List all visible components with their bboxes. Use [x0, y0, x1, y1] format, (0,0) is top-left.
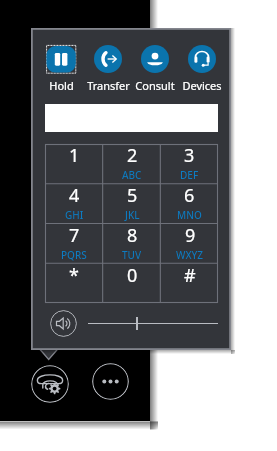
- staticText: GHI: [65, 208, 84, 222]
- staticText: Hold: [49, 78, 74, 93]
- staticText: 8: [127, 223, 138, 248]
- button[interactable]: 9: [161, 224, 218, 264]
- staticText: 2: [127, 143, 138, 168]
- button[interactable]: Call settings: [31, 365, 69, 403]
- staticText: PQRS: [61, 248, 87, 262]
- staticText: TUV: [122, 248, 142, 262]
- button[interactable]: #: [161, 264, 218, 303]
- staticText: 0: [127, 263, 138, 288]
- staticText: JKL: [125, 208, 140, 222]
- staticText: *: [69, 263, 79, 288]
- button[interactable]: Speaker volume: [50, 310, 77, 337]
- button[interactable]: 8: [103, 224, 161, 264]
- staticText: Consult: [135, 78, 175, 93]
- button[interactable]: Devices: [179, 44, 225, 91]
- button[interactable]: *: [45, 264, 103, 303]
- staticText: 6: [184, 183, 195, 208]
- button[interactable]: Hold: [38, 44, 84, 91]
- staticText: 4: [69, 183, 80, 208]
- staticText: 5: [127, 183, 138, 208]
- button[interactable]: 6: [161, 184, 218, 224]
- staticText: Devices: [182, 78, 222, 93]
- button[interactable]: Volume slider: [86, 313, 220, 334]
- staticText: WXYZ: [176, 248, 204, 262]
- button[interactable]: 1: [45, 144, 103, 184]
- staticText: DEF: [180, 168, 199, 182]
- button[interactable]: 5: [103, 184, 161, 224]
- button[interactable]: 7: [45, 224, 103, 264]
- button[interactable]: 2: [103, 144, 161, 184]
- staticText: ABC: [122, 168, 142, 182]
- button[interactable]: More options: [92, 363, 129, 400]
- button[interactable]: Transfer: [85, 44, 131, 91]
- staticText: 7: [69, 223, 80, 248]
- staticText: 3: [184, 143, 195, 168]
- staticText: Transfer: [87, 78, 130, 93]
- button[interactable]: 3: [161, 144, 218, 184]
- button[interactable]: 4: [45, 184, 103, 224]
- staticText: #: [184, 263, 196, 288]
- staticText: MNO: [177, 208, 202, 222]
- button[interactable]: 0: [103, 264, 161, 303]
- button[interactable]: Consult: [132, 44, 178, 91]
- staticText: 1: [69, 143, 80, 168]
- staticText: 9: [185, 223, 196, 248]
